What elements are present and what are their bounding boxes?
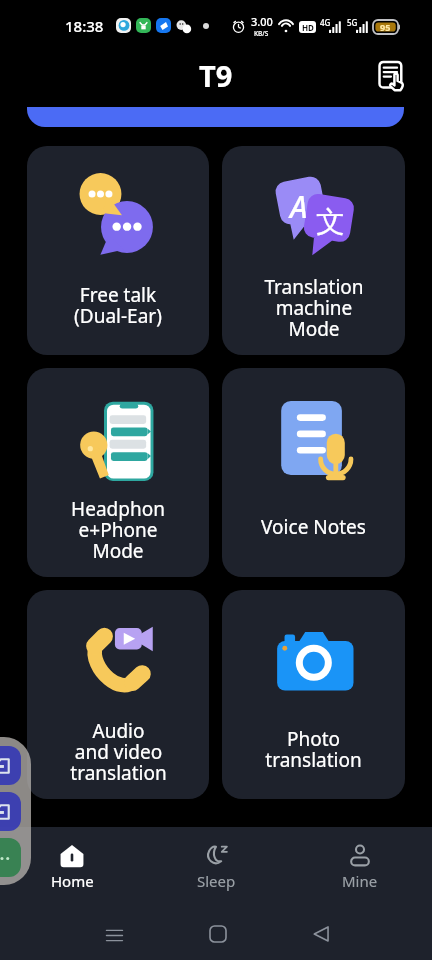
button[interactable]: Voice Notes (222, 368, 405, 577)
staticText: 4G (320, 17, 331, 28)
staticText: HD (302, 22, 314, 33)
staticText: A (290, 186, 308, 227)
button[interactable]: Records (372, 55, 412, 95)
staticText: 95 (380, 21, 391, 33)
staticText: Photo translation (265, 726, 362, 773)
button[interactable]: A (222, 146, 405, 355)
staticText: Translation machine Mode (264, 274, 364, 336)
staticText: 3.00 (251, 14, 273, 29)
staticText: 文 (316, 204, 346, 241)
staticText: T9 (199, 56, 233, 95)
staticText: Home (51, 871, 94, 891)
staticText: 18:38 (65, 16, 104, 36)
staticText: Headphon e+Phone Mode (71, 496, 165, 558)
staticText: Sleep (197, 871, 236, 891)
button[interactable] (0, 737, 31, 885)
button[interactable]: Back (300, 913, 342, 955)
staticText: KB/S (254, 29, 269, 38)
staticText: Mine (342, 871, 378, 891)
button[interactable]: Free talk (Dual-Ear) (27, 146, 209, 355)
staticText: Free talk (Dual-Ear) (74, 282, 162, 329)
button[interactable] (27, 107, 404, 127)
staticText: Voice Notes (261, 514, 366, 540)
staticText: Audio and video translation (70, 718, 167, 780)
button[interactable]: Home (0, 827, 144, 912)
button[interactable]: Home (197, 913, 239, 955)
button[interactable]: Mine (288, 827, 432, 912)
button[interactable]: Audio and video translation (27, 590, 209, 799)
button[interactable]: Sleep (144, 827, 288, 912)
staticText: 5G (347, 17, 358, 28)
button[interactable]: Headphon e+Phone Mode (27, 368, 209, 577)
button[interactable]: Recent apps (93, 914, 135, 956)
button[interactable]: Photo translation (222, 590, 405, 799)
